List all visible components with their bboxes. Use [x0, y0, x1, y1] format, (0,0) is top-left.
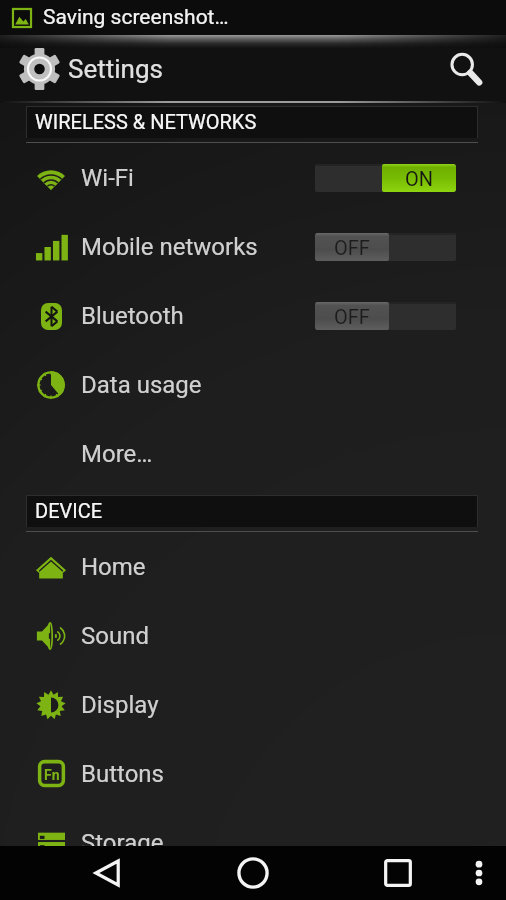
button[interactable]: More options [455, 846, 503, 900]
button[interactable]: Home [207, 846, 299, 900]
staticText: Sound [81, 622, 149, 650]
button[interactable]: OFF [315, 302, 456, 330]
button[interactable]: Storage [0, 808, 506, 877]
staticText: More… [81, 440, 153, 468]
staticText: Bluetooth [81, 302, 184, 330]
staticText: Display [81, 691, 159, 719]
button[interactable]: Fn [0, 739, 506, 808]
staticText: Fn [44, 767, 60, 783]
staticText: WIRELESS & NETWORKS [35, 110, 257, 133]
staticText: OFF [334, 305, 370, 328]
staticText: ON [405, 167, 434, 190]
button[interactable]: Recent apps [352, 846, 444, 900]
staticText: Mobile networks [81, 233, 258, 261]
button[interactable]: Display [0, 670, 506, 739]
button[interactable]: Search [442, 44, 492, 94]
staticText: Wi-Fi [81, 164, 134, 192]
button[interactable]: Wi-Fi [0, 143, 506, 212]
staticText: Settings [68, 54, 163, 84]
button[interactable]: ON [315, 164, 456, 192]
staticText: Home [81, 553, 146, 581]
button[interactable]: Sound [0, 601, 506, 670]
staticText: Buttons [81, 760, 164, 788]
button[interactable]: Data usage [0, 350, 506, 419]
button[interactable]: OFF [315, 233, 456, 261]
button[interactable]: Bluetooth [0, 281, 506, 350]
button[interactable]: More… [0, 419, 506, 488]
staticText: OFF [334, 236, 370, 259]
staticText: Saving screenshot… [43, 5, 229, 30]
button[interactable]: Home [0, 532, 506, 601]
button[interactable]: Back [61, 846, 153, 900]
staticText: Data usage [81, 371, 202, 399]
staticText: Storage [81, 829, 164, 857]
staticText: DEVICE [35, 499, 103, 522]
button[interactable]: Mobile networks [0, 212, 506, 281]
